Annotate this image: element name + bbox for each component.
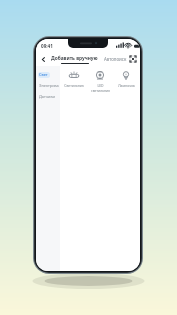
- staticText: светильник: [91, 88, 110, 93]
- button[interactable]: Сканировать: [128, 54, 138, 64]
- button[interactable]: Датчики: [36, 91, 60, 102]
- staticText: Свет: [39, 72, 48, 77]
- button[interactable]: LED: [87, 69, 113, 94]
- staticText: Автопоиск: [104, 56, 127, 62]
- button[interactable]: Назад: [38, 54, 48, 64]
- staticText: 09:41: [41, 43, 53, 49]
- staticText: Добавить вручную: [51, 55, 98, 62]
- button[interactable]: Электрика: [36, 80, 60, 91]
- button[interactable]: Свет: [36, 69, 60, 80]
- staticText: Датчики: [39, 94, 55, 99]
- staticText: Светильник: [64, 83, 84, 88]
- button[interactable]: Добавить вручную: [51, 55, 98, 64]
- staticText: Электрика: [39, 83, 59, 88]
- staticText: LED: [97, 83, 104, 88]
- staticText: Лампочка: [118, 83, 135, 88]
- button[interactable]: Светильник: [61, 69, 87, 89]
- button[interactable]: Автопоиск: [104, 56, 127, 64]
- button[interactable]: Лампочка: [113, 69, 139, 89]
